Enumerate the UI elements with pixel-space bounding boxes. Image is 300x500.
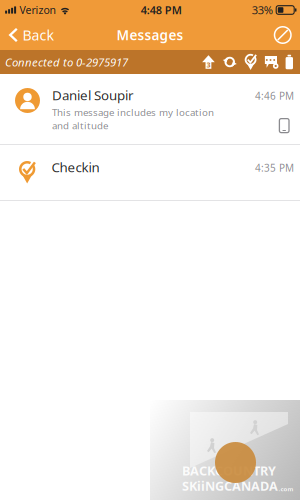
staticText: Verizon bbox=[19, 3, 56, 17]
button[interactable]: Back bbox=[0, 20, 62, 50]
staticText: 4:46 PM bbox=[255, 89, 294, 103]
staticText: BACKCOUNTRY bbox=[182, 462, 276, 479]
button[interactable]: Daniel Soupir bbox=[0, 74, 300, 144]
staticText: 3 bbox=[206, 60, 210, 69]
staticText: Back bbox=[22, 25, 54, 45]
button[interactable]: Message settings bbox=[265, 55, 278, 69]
staticText: SKiiNGCANADA bbox=[182, 477, 278, 495]
button[interactable]: Device battery bbox=[286, 55, 293, 69]
button[interactable]: Sync bbox=[223, 55, 237, 69]
staticText: This message includes my location and al… bbox=[52, 106, 214, 132]
staticText: 4:35 PM bbox=[255, 161, 294, 175]
staticText: Connected to 0-2975917 bbox=[5, 54, 128, 70]
staticText: Daniel Soupir bbox=[52, 86, 134, 104]
staticText: 33% bbox=[252, 2, 273, 18]
staticText: 4:48 PM bbox=[141, 3, 182, 17]
button[interactable]: Check in bbox=[245, 54, 257, 70]
staticText: Messages bbox=[116, 26, 183, 44]
button[interactable]: Block messages bbox=[264, 20, 300, 50]
button[interactable]: Messages pending bbox=[202, 55, 215, 69]
button[interactable]: Checkin bbox=[0, 145, 300, 200]
staticText: Checkin bbox=[51, 158, 99, 176]
staticText: .com bbox=[278, 485, 293, 493]
